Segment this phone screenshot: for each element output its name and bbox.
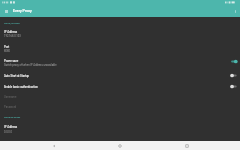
button[interactable]: Back <box>41 141 67 150</box>
button[interactable]: Open navigation drawer <box>0 5 13 17</box>
button[interactable] <box>0 79 240 90</box>
button[interactable]: More options <box>231 5 240 17</box>
staticText: Power save <box>4 59 19 62</box>
staticText: 8080 <box>4 50 10 53</box>
staticText: Every Proxy <box>13 9 32 13</box>
button[interactable]: Switch off <box>229 71 240 80</box>
staticText: Username <box>4 95 17 98</box>
button[interactable] <box>0 121 240 135</box>
staticText: HTTP/S Proxy <box>4 22 20 25</box>
button[interactable] <box>0 40 240 54</box>
staticText: IP Address <box>4 125 18 128</box>
button[interactable]: Switch on <box>229 57 240 66</box>
staticText: Enable basic authentication <box>4 85 38 88</box>
staticText: Password <box>4 105 17 108</box>
button[interactable] <box>0 54 240 68</box>
staticText: 192.168.0.103 <box>4 35 21 38</box>
staticText: SOCKS5 Proxy <box>4 116 21 119</box>
staticText: Port <box>4 45 10 48</box>
staticText: IP Address <box>4 30 18 33</box>
staticText: Switch proxy off when IP Address unavail… <box>4 64 57 67</box>
button[interactable] <box>0 26 240 40</box>
staticText: Auto Start at Startup <box>4 74 30 77</box>
button[interactable]: Switch off <box>229 82 240 91</box>
button[interactable]: Recent apps <box>174 141 200 150</box>
button[interactable]: Home <box>107 141 133 150</box>
staticText: 0.0.0.0 <box>4 131 12 134</box>
button[interactable] <box>0 68 240 79</box>
